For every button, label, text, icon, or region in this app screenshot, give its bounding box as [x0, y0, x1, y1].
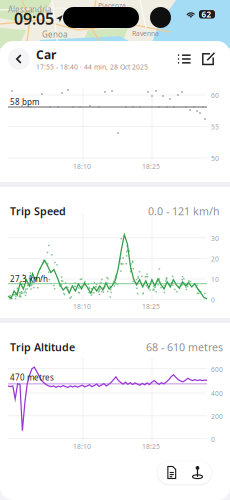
staticText: 10 [211, 275, 219, 284]
button[interactable]: Export file [158, 461, 184, 484]
staticText: 0 [211, 295, 215, 304]
staticText: 27.3 km/h [10, 273, 48, 284]
staticText: 09:05 [14, 8, 54, 29]
staticText: 68 - 610 metres [146, 340, 223, 354]
button[interactable]: Edit [196, 48, 220, 70]
staticText: Car [36, 47, 56, 62]
staticText: 17:55 - 18:40 · 44 min, 28 Oct 2025 [36, 62, 148, 71]
staticText: 200 [211, 412, 223, 421]
staticText: Trip Altitude [10, 340, 75, 354]
staticText: 18:25 [142, 302, 160, 311]
staticText: 62 [201, 9, 211, 20]
button[interactable]: Back [4, 44, 34, 74]
button[interactable]: Show on map [184, 461, 210, 484]
staticText: 18:10 [73, 442, 91, 451]
staticText: 55 [211, 122, 219, 131]
staticText: Trip Speed [10, 204, 66, 218]
staticText: 20 [211, 254, 219, 263]
button[interactable]: List [172, 48, 196, 70]
staticText: 400 [211, 389, 223, 398]
staticText: Ravenna [132, 29, 159, 38]
staticText: 18:10 [73, 162, 91, 171]
staticText: 18:25 [142, 442, 160, 451]
staticText: 600 [211, 365, 223, 374]
staticText: 0.0 - 121 km/h [148, 204, 220, 218]
staticText: 50 [211, 154, 219, 163]
staticText: 470 metres [10, 372, 54, 383]
staticText: 0 [211, 435, 215, 444]
staticText: 18:10 [73, 302, 91, 311]
staticText: Genoa [42, 29, 67, 40]
staticText: 58 bpm [10, 96, 39, 107]
staticText: 30 [211, 234, 219, 243]
staticText: 60 [211, 91, 219, 100]
staticText: 18:25 [142, 162, 160, 171]
staticText: Piacenza [98, 1, 126, 10]
staticText: Alessandria [8, 4, 51, 15]
